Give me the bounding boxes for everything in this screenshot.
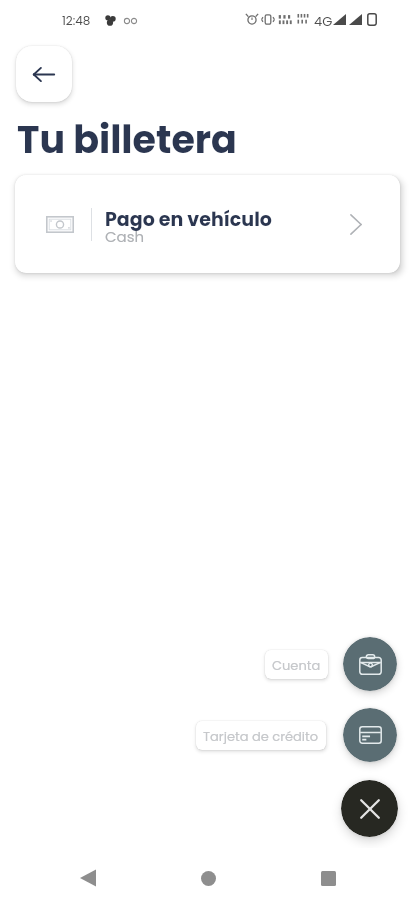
staticText: Pago en vehículo [105,206,272,233]
button[interactable]: Cuenta [343,637,397,691]
staticText: 12:48 [62,12,91,29]
staticText: Tarjeta de crédito [203,727,319,745]
button[interactable]: Back [64,856,112,900]
button[interactable]: Tarjeta de crédito [196,721,326,750]
staticText: 4G [314,12,333,30]
button[interactable]: Home [184,856,232,900]
button[interactable]: Back [16,46,72,102]
staticText: Tu billetera [17,113,237,166]
staticText: Cuenta [272,656,321,674]
button[interactable]: Tarjeta de crédito [343,708,397,762]
button[interactable]: Cerrar [341,780,398,837]
button[interactable]: Cuenta [265,650,328,679]
staticText: Cash [105,226,145,247]
button[interactable]: Pago en vehículo [15,175,400,273]
button[interactable]: Recents [304,856,352,900]
